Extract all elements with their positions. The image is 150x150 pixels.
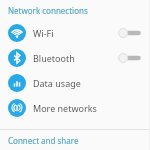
button[interactable]: Bluetooth: [0, 45, 150, 70]
other: More networks: [8, 99, 26, 117]
other: Data usage: [8, 74, 26, 92]
staticText: Data usage: [33, 77, 81, 89]
button[interactable]: Toggle off: [118, 25, 142, 41]
staticText: Bluetooth: [33, 52, 75, 64]
staticText: Wi-Fi: [33, 27, 54, 39]
other: Bluetooth: [8, 49, 26, 67]
staticText: More networks: [33, 102, 97, 114]
button[interactable]: Data usage: [0, 70, 150, 95]
staticText: Network connections: [8, 5, 88, 16]
other: Wi-Fi: [8, 24, 26, 42]
staticText: Connect and share: [8, 135, 79, 146]
button[interactable]: Wi-Fi: [0, 20, 150, 45]
button[interactable]: More networks: [0, 95, 150, 120]
button[interactable]: Toggle off: [118, 50, 142, 66]
